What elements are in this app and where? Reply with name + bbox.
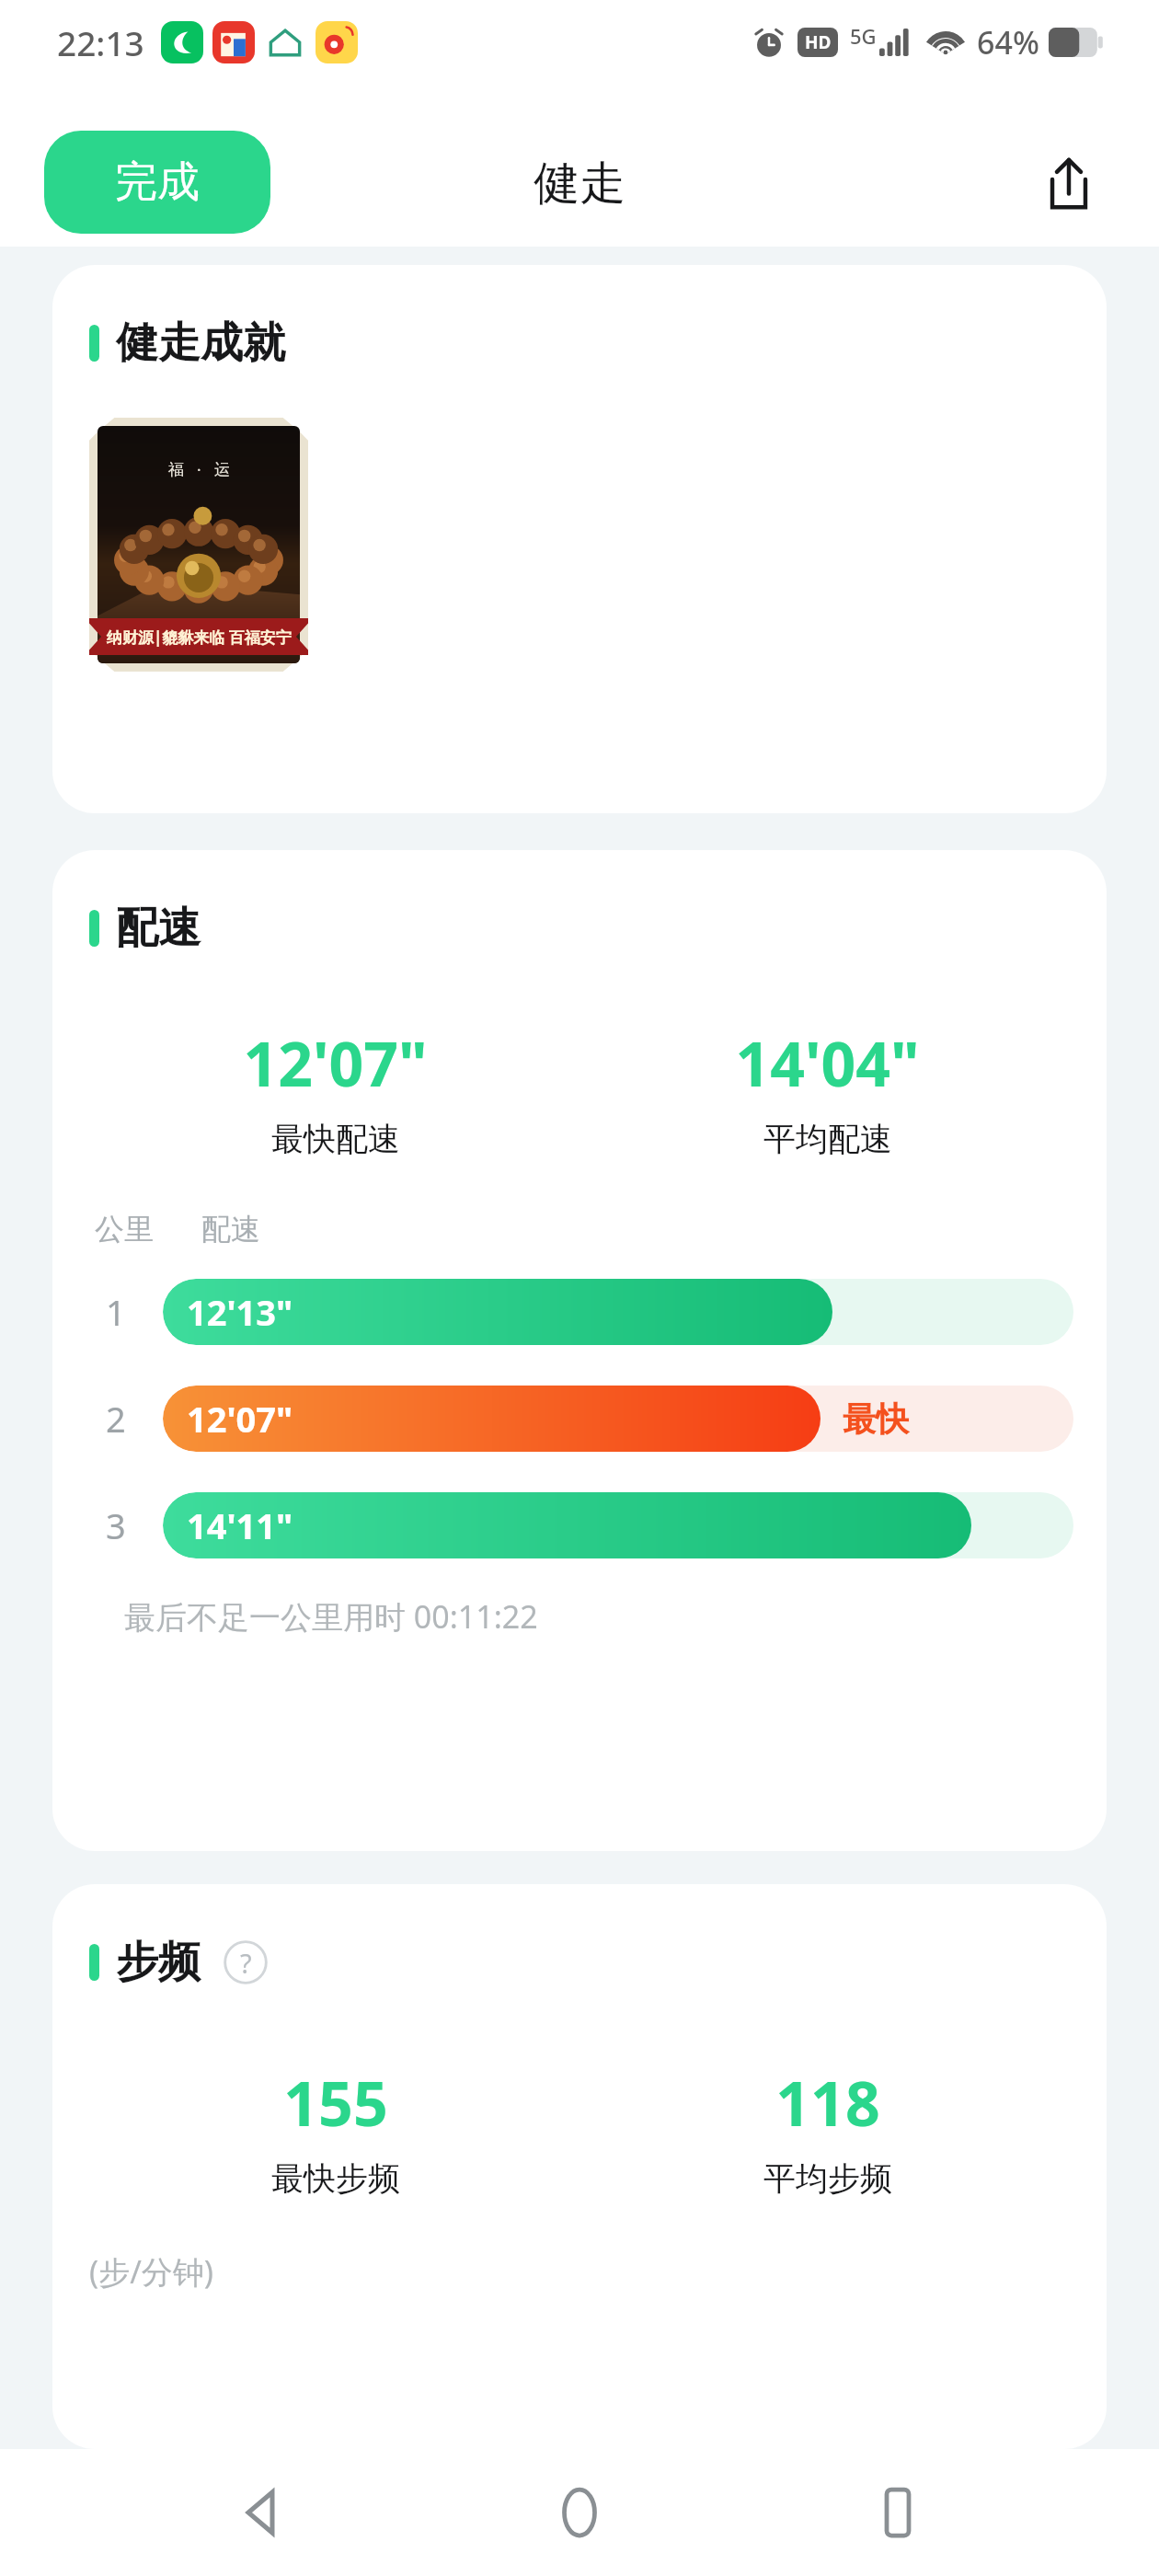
staticText: 14'04" — [735, 1021, 920, 1104]
staticText: HD — [805, 30, 832, 54]
staticText: 平均配速 — [763, 1119, 892, 1159]
staticText: 最后不足一公里用时 00:11:22 — [124, 1595, 538, 1638]
staticText: 14'11" — [187, 1501, 293, 1549]
staticText: 12'13" — [187, 1288, 293, 1336]
staticText: 155 — [283, 2061, 388, 2144]
button[interactable]: 健走成就 — [52, 265, 1107, 813]
staticText: 纳财源|貔貅来临 百福安宁 — [107, 627, 292, 648]
button[interactable]: Home — [523, 2456, 636, 2569]
staticText: 完成 — [115, 155, 200, 209]
staticText: 2 — [106, 1395, 126, 1443]
button[interactable]: Back — [206, 2456, 318, 2569]
button[interactable]: Recents — [842, 2456, 954, 2569]
staticText: (步/分钟) — [89, 2250, 214, 2293]
staticText: 最快步频 — [271, 2158, 400, 2199]
staticText: 118 — [775, 2061, 880, 2144]
staticText: · — [197, 459, 201, 480]
staticText: 配速 — [116, 902, 201, 955]
staticText: 12'07" — [243, 1021, 428, 1104]
staticText: 22:13 — [57, 19, 144, 65]
staticText: 福 — [168, 460, 184, 479]
staticText: 配速 — [201, 1211, 260, 1248]
staticText: 64% — [977, 21, 1039, 63]
staticText: 最快配速 — [271, 1119, 400, 1159]
staticText: 1 — [106, 1288, 126, 1336]
staticText: 3 — [106, 1501, 126, 1549]
staticText: 健走成就 — [116, 316, 285, 370]
button[interactable]: Share — [1025, 138, 1113, 226]
staticText: 5G — [850, 22, 877, 50]
button[interactable]: 完成 — [44, 131, 270, 234]
staticText: 12'07" — [187, 1395, 293, 1443]
staticText: 步频 — [116, 1936, 201, 1989]
staticText: 平均步频 — [763, 2158, 892, 2199]
staticText: ? — [240, 1945, 252, 1981]
staticText: 运 — [214, 460, 230, 479]
staticText: 健走 — [534, 155, 625, 213]
staticText: 公里 — [95, 1211, 154, 1248]
button[interactable]: Help — [221, 1938, 270, 1987]
staticText: 最快 — [843, 1398, 909, 1440]
